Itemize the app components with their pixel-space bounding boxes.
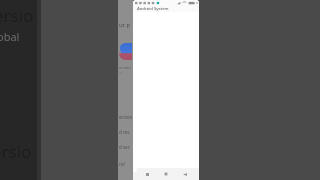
staticText: obal: [0, 29, 38, 44]
staticText: ersion: [119, 114, 133, 120]
button[interactable]: rol: [118, 160, 133, 167]
button[interactable]: Back: [180, 169, 190, 179]
button[interactable]: ut p: [118, 0, 133, 180]
button[interactable]: Recent apps: [142, 169, 152, 179]
button[interactable]: ersion: [0, 0, 41, 180]
staticText: ut p: [119, 21, 134, 29]
staticText: ol: [119, 70, 134, 75]
button[interactable]: Android System: [133, 6, 199, 12]
button[interactable]: d res: [118, 128, 133, 135]
button[interactable]: Home: [161, 169, 171, 179]
staticText: Android System: [137, 6, 169, 12]
staticText: d res: [119, 129, 130, 135]
staticText: d sec: [119, 144, 130, 150]
button[interactable]: ersion: [118, 113, 133, 120]
staticText: rol: [119, 161, 125, 167]
staticText: ersion: [119, 65, 134, 70]
button[interactable]: d sec: [118, 143, 133, 150]
